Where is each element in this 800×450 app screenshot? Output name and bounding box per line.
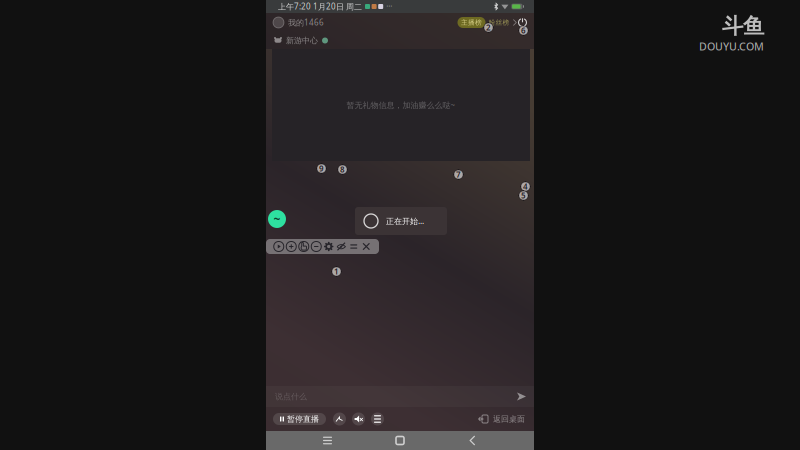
button[interactable]: 说点什么 <box>266 386 534 407</box>
button[interactable]: Mute <box>352 412 365 425</box>
button[interactable]: Zoom out <box>311 241 322 252</box>
staticText: 2 <box>486 22 491 33</box>
staticText: 7 <box>456 169 461 180</box>
button[interactable]: Back <box>461 431 483 450</box>
button[interactable]: 暂停直播 <box>273 413 326 425</box>
staticText: ~ <box>273 211 280 227</box>
button[interactable]: Home <box>389 431 411 450</box>
staticText: 8 <box>340 164 345 175</box>
staticText: 5 <box>521 190 526 201</box>
staticText: 6 <box>521 25 526 36</box>
button[interactable]: Close <box>361 241 372 252</box>
staticText: 说点什么 <box>275 392 307 401</box>
staticText: DOUYU.COM <box>699 39 764 53</box>
button[interactable]: 主播榜 <box>457 17 517 28</box>
button[interactable]: 我的1466 <box>266 17 324 28</box>
staticText: 1 <box>334 266 339 277</box>
button[interactable]: Collapse <box>348 241 359 252</box>
staticText: ··· <box>386 1 392 12</box>
button[interactable]: Settings <box>323 241 334 252</box>
button[interactable]: Hide overlay <box>336 241 347 252</box>
staticText: 4 <box>523 181 528 192</box>
button[interactable]: More <box>371 412 384 425</box>
button[interactable]: Show touches <box>298 241 309 252</box>
staticText: 新游中心 <box>286 36 318 45</box>
button[interactable]: 返回桌面 <box>480 414 534 424</box>
staticText: 返回桌面 <box>493 414 525 424</box>
button[interactable]: Assistant <box>268 210 286 228</box>
button[interactable]: Share <box>333 412 346 425</box>
button[interactable]: Record <box>273 241 284 252</box>
staticText: 9 <box>319 163 324 174</box>
staticText: 上午7:20 1月20日 周二 <box>278 1 362 12</box>
staticText: 我的1466 <box>288 17 324 28</box>
staticText: 暂无礼物信息，加油赚么么哒~ <box>346 100 455 110</box>
staticText: 斗鱼 <box>722 13 764 39</box>
button[interactable]: 新游中心 <box>266 36 328 45</box>
staticText: 粉丝榜 <box>488 18 509 27</box>
staticText: 主播榜 <box>461 18 482 27</box>
button[interactable]: End broadcast <box>517 17 534 28</box>
button[interactable]: Recents <box>316 431 338 450</box>
staticText: 暂停直播 <box>287 414 319 424</box>
button[interactable]: Zoom in <box>286 241 297 252</box>
staticText: 正在开始... <box>386 216 424 226</box>
